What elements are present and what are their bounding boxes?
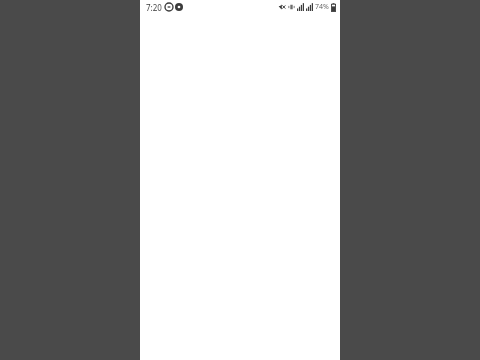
- button[interactable]: Message notification: [165, 3, 173, 11]
- staticText: 74%: [315, 2, 329, 12]
- button[interactable]: App notification: [175, 3, 183, 11]
- other: Battery 74 percent: [331, 3, 336, 12]
- other: Mobile signal: [297, 3, 304, 11]
- staticText: 7:20: [146, 2, 162, 13]
- other: Vibrate: [288, 3, 295, 11]
- other: Mobile signal 2: [306, 3, 313, 11]
- other: Silent mode: [278, 3, 286, 11]
